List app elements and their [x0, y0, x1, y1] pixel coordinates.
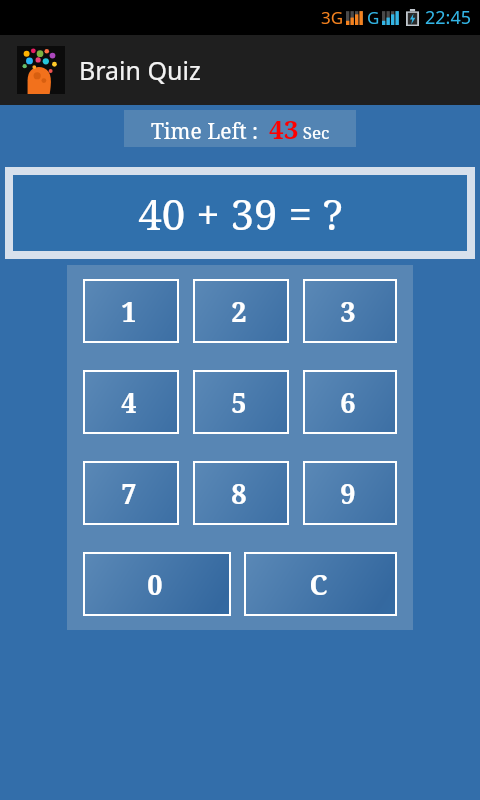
- staticText: 7: [121, 475, 137, 512]
- staticText: 3G: [321, 6, 344, 29]
- button[interactable]: 4: [85, 372, 177, 432]
- staticText: Brain Quiz: [79, 53, 201, 87]
- staticText: 8: [231, 475, 247, 512]
- staticText: 3: [340, 293, 356, 330]
- staticText: 22:45: [425, 5, 472, 30]
- staticText: 40 + 39 = ?: [138, 185, 343, 242]
- staticText: 9: [340, 475, 356, 512]
- button[interactable]: 2: [195, 281, 287, 341]
- staticText: 0: [147, 566, 163, 603]
- staticText: 4: [121, 384, 137, 421]
- staticText: Time Left : 43 Sec: [151, 111, 330, 146]
- staticText: 2: [231, 293, 247, 330]
- staticText: 6: [340, 384, 356, 421]
- staticText: G: [367, 6, 380, 29]
- button[interactable]: 0: [85, 554, 229, 614]
- button[interactable]: 5: [195, 372, 287, 432]
- staticText: 1: [121, 293, 137, 330]
- button[interactable]: 9: [305, 463, 395, 523]
- staticText: C: [309, 566, 328, 603]
- button[interactable]: C: [246, 554, 395, 614]
- button[interactable]: 8: [195, 463, 287, 523]
- button[interactable]: 3: [305, 281, 395, 341]
- button[interactable]: 1: [85, 281, 177, 341]
- button[interactable]: 6: [305, 372, 395, 432]
- staticText: 5: [231, 384, 247, 421]
- button[interactable]: 7: [85, 463, 177, 523]
